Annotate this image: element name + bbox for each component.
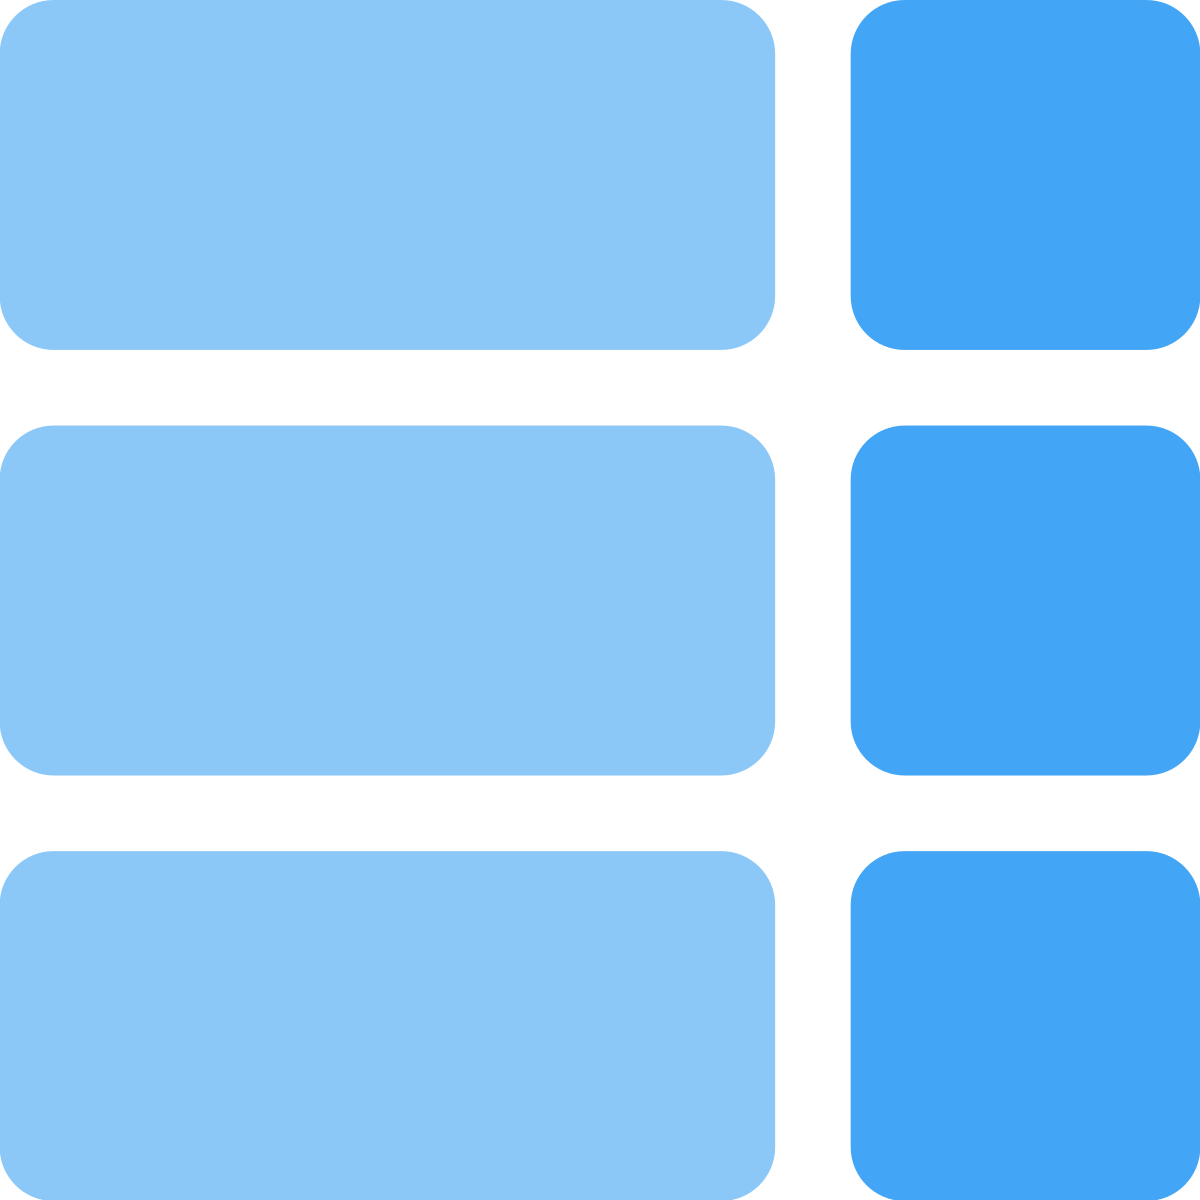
button[interactable]: Row 3 detail: [851, 851, 1200, 1200]
button[interactable]: Row 2 detail: [851, 425, 1200, 775]
button[interactable]: Row 3 content: [0, 851, 775, 1200]
button[interactable]: Row 1 content: [0, 0, 775, 350]
button[interactable]: Row 2 content: [0, 425, 775, 775]
button[interactable]: Row 1 detail: [851, 0, 1200, 350]
